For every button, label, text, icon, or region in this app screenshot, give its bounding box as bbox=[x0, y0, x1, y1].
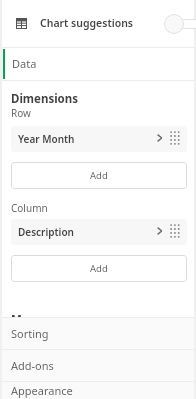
staticText: Add bbox=[90, 169, 108, 182]
button[interactable]: Description bbox=[11, 219, 187, 245]
staticText: Chart suggestions bbox=[40, 16, 134, 30]
other: Chart type bbox=[16, 18, 27, 29]
staticText: Column bbox=[11, 201, 48, 215]
staticText: Dimensions bbox=[11, 91, 79, 107]
staticText: Add bbox=[90, 262, 108, 275]
button[interactable]: Toggle chart suggestions bbox=[164, 12, 196, 34]
staticText: Measures bbox=[11, 312, 67, 317]
button[interactable]: Add-ons bbox=[2, 349, 194, 381]
staticText: Row bbox=[11, 106, 31, 120]
button[interactable]: Year Month bbox=[11, 126, 187, 152]
staticText: Year Month bbox=[18, 132, 75, 146]
staticText: Sorting bbox=[11, 326, 49, 341]
button[interactable]: Sorting bbox=[2, 317, 194, 349]
button[interactable]: Add bbox=[11, 162, 187, 189]
button[interactable]: Appearance bbox=[2, 381, 194, 399]
staticText: Appearance bbox=[11, 383, 73, 398]
staticText: Add-ons bbox=[11, 358, 54, 373]
staticText: Description bbox=[18, 225, 74, 239]
staticText: Data bbox=[12, 56, 37, 71]
button[interactable]: Data bbox=[2, 48, 194, 80]
button[interactable]: Add bbox=[11, 255, 187, 282]
